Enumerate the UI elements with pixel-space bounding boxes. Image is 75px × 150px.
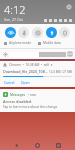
button[interactable]: Back [12,141,21,150]
staticText: Cancel [4,80,15,84]
staticText: Download_file_2020_1080 (1).zip [3,69,49,74]
button[interactable]: Auto rotate [59,27,70,38]
button[interactable]: Flashlight [46,27,57,38]
staticText: 4:12 [4,2,26,17]
button[interactable]: Cancel [3,79,16,85]
button[interactable]: Settings [66,4,72,10]
button[interactable]: Chrome • 10:38 AM • wifi ▾ [3,63,72,85]
staticText: Messages [10,93,26,97]
staticText: Airplane mode [9,41,32,45]
button[interactable]: Wi-Fi [5,27,16,38]
button[interactable]: Brightness [3,49,72,59]
staticText: Tap to learn more about this change [3,105,58,109]
staticText: Open [21,80,30,84]
button[interactable]: Bluetooth [18,27,29,38]
button[interactable]: Open [20,79,31,85]
button[interactable]: Messages [3,92,72,109]
staticText: Chrome • 10:38 AM • wifi ▾ [9,63,53,67]
button[interactable]: Recents [54,141,63,150]
staticText: Access disabled [3,99,32,104]
staticText: 12.4 MB / 21 MB [49,70,72,74]
button[interactable]: Do not disturb [32,27,43,38]
staticText: Mobile data [43,41,61,45]
button[interactable]: Home [33,141,42,150]
staticText: Sun, 27 Oct [4,17,23,22]
staticText: • now [28,93,36,97]
